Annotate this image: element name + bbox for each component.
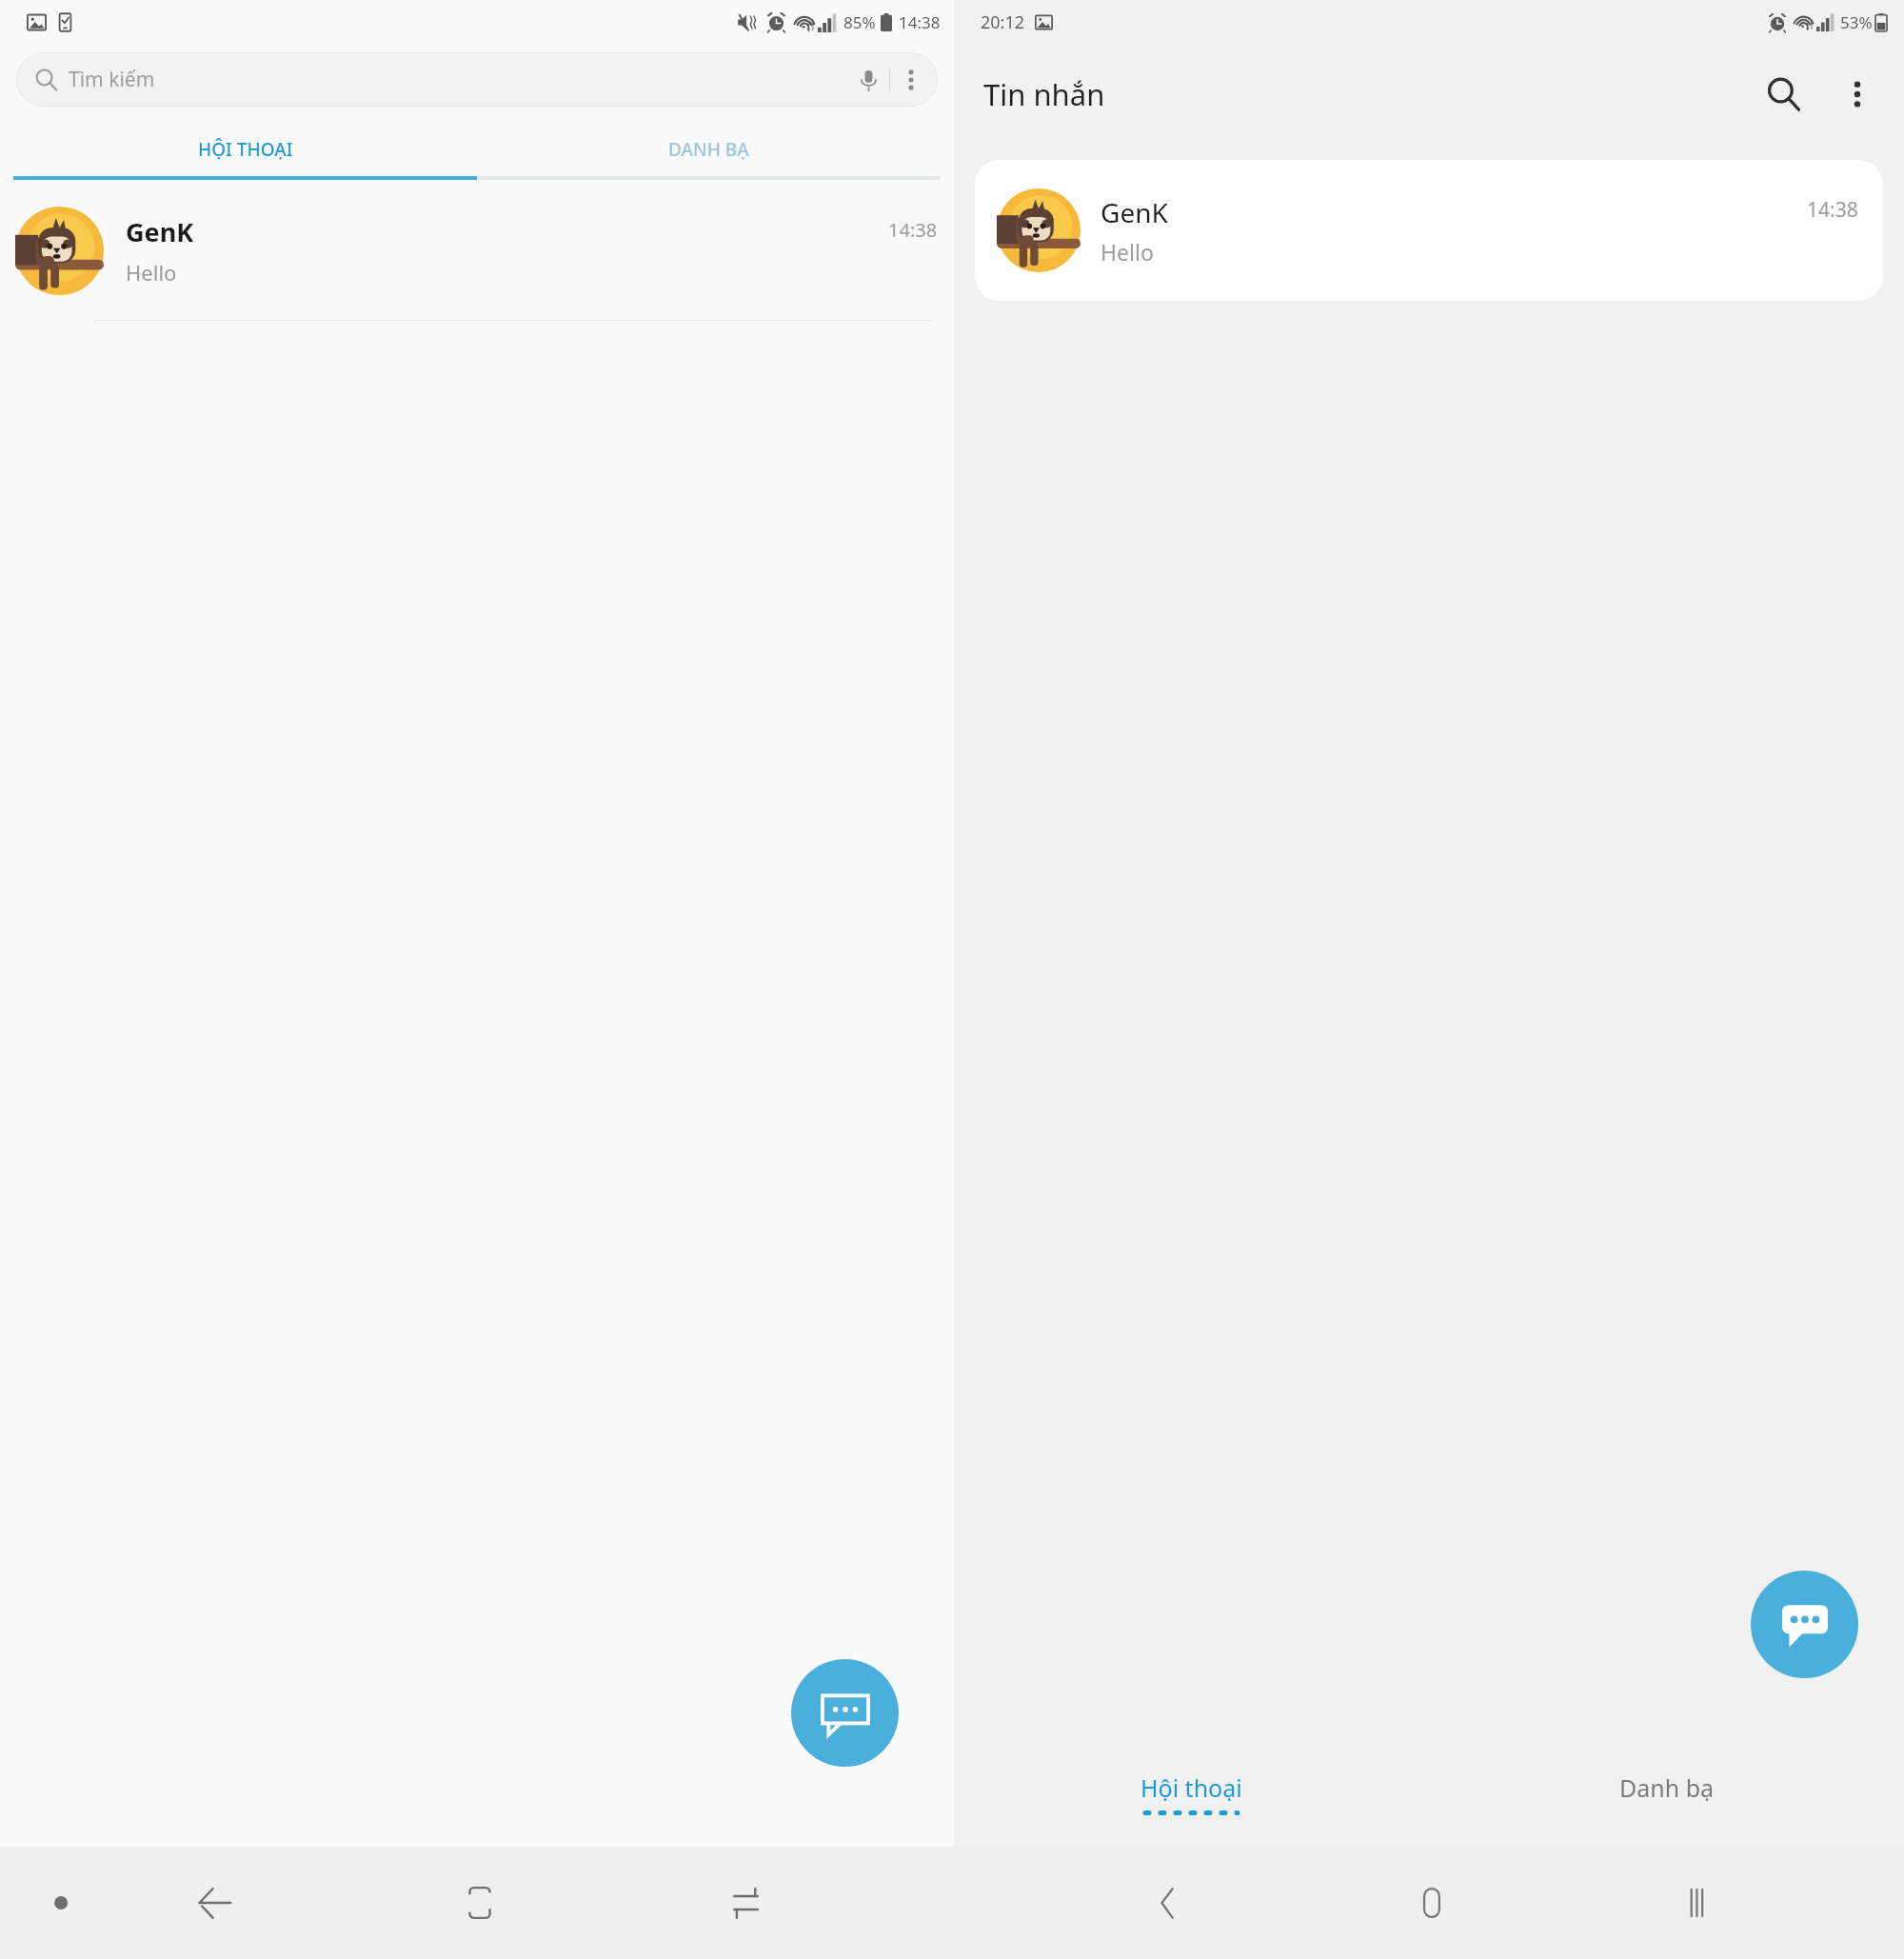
staticText: 14:38 [899,11,941,33]
staticText: 14:38 [1807,196,1858,224]
button[interactable]: Voice search [847,59,889,101]
staticText: GenK [126,214,194,249]
staticText: HỘI THOẠI [198,137,293,162]
staticText: Hội thoại [1140,1771,1242,1804]
staticText: 20:12 [981,10,1025,34]
button[interactable]: More options [890,59,932,101]
button[interactable]: GenK [975,160,1883,301]
button[interactable]: New conversation [791,1659,899,1767]
button[interactable]: Tìm kiếm [16,52,938,107]
button[interactable]: More options [1830,67,1885,122]
button[interactable]: Search [1754,64,1815,125]
staticText: Tin nhắn [983,74,1105,114]
button[interactable]: Danh bạ [1429,1740,1904,1847]
button[interactable]: GenK [0,180,954,321]
staticText: Hello [1101,237,1154,267]
staticText: 14:38 [888,217,938,243]
button[interactable]: HỘI THOẠI [13,122,477,176]
staticText: 85% [843,11,876,33]
staticText: DANH BẠ [668,137,749,162]
button[interactable]: New conversation [1751,1571,1858,1678]
button[interactable]: Hội thoại [954,1740,1429,1847]
staticText: GenK [1101,194,1168,230]
staticText: Danh bạ [1619,1771,1715,1804]
button[interactable]: DANH BẠ [477,122,941,176]
staticText: 53% [1840,11,1873,33]
staticText: Hello [126,258,177,287]
staticText: Tìm kiếm [69,66,155,93]
